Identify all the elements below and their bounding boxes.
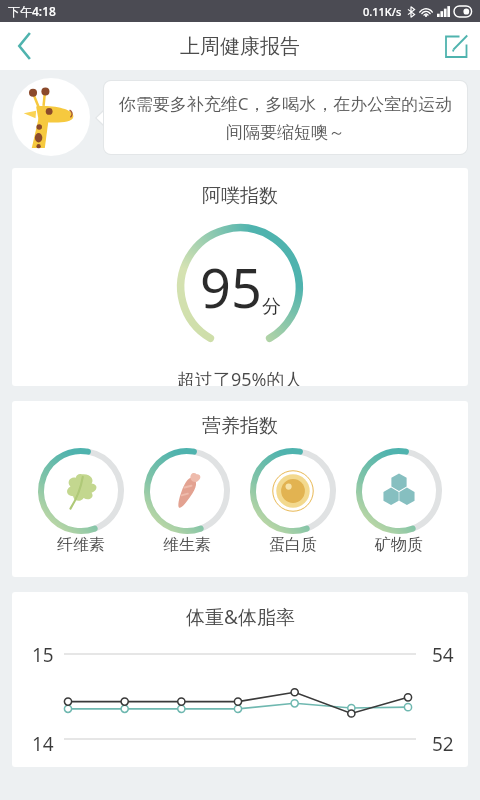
staticText: 分 — [262, 295, 281, 319]
staticText: 54 — [432, 642, 454, 668]
staticText: 维生素 — [163, 535, 211, 555]
staticText: 矿物质 — [375, 535, 423, 555]
staticText: 阿噗指数 — [202, 184, 278, 208]
staticText: 营养指数 — [202, 414, 278, 438]
button[interactable]: Edit — [432, 22, 480, 70]
staticText: 蛋白质 — [269, 535, 317, 555]
staticText: 下午4:18 — [8, 3, 56, 19]
staticText: 超过了95%的人 — [177, 367, 303, 386]
button[interactable]: 蛋白质 — [250, 448, 336, 555]
button[interactable]: 维生素 — [144, 448, 230, 555]
staticText: 0.11K/s — [363, 4, 402, 19]
staticText: 体重&体脂率 — [186, 604, 295, 630]
staticText: 上周健康报告 — [180, 34, 300, 59]
staticText: 14 — [32, 731, 54, 757]
staticText: 纤维素 — [57, 535, 105, 555]
button[interactable]: 营养指数 — [12, 401, 468, 577]
button[interactable]: 体重&体脂率 — [12, 592, 468, 767]
staticText: 15 — [32, 642, 54, 668]
button[interactable]: 阿噗指数 — [12, 168, 468, 386]
staticText: 你需要多补充维C，多喝水，在办公室的运动间隔要缩短噢～ — [114, 92, 457, 143]
button[interactable]: 矿物质 — [356, 448, 442, 555]
button[interactable]: Back — [0, 22, 48, 70]
button[interactable]: 纤维素 — [38, 448, 124, 555]
staticText: 52 — [432, 731, 454, 757]
staticText: 95 — [200, 250, 262, 324]
